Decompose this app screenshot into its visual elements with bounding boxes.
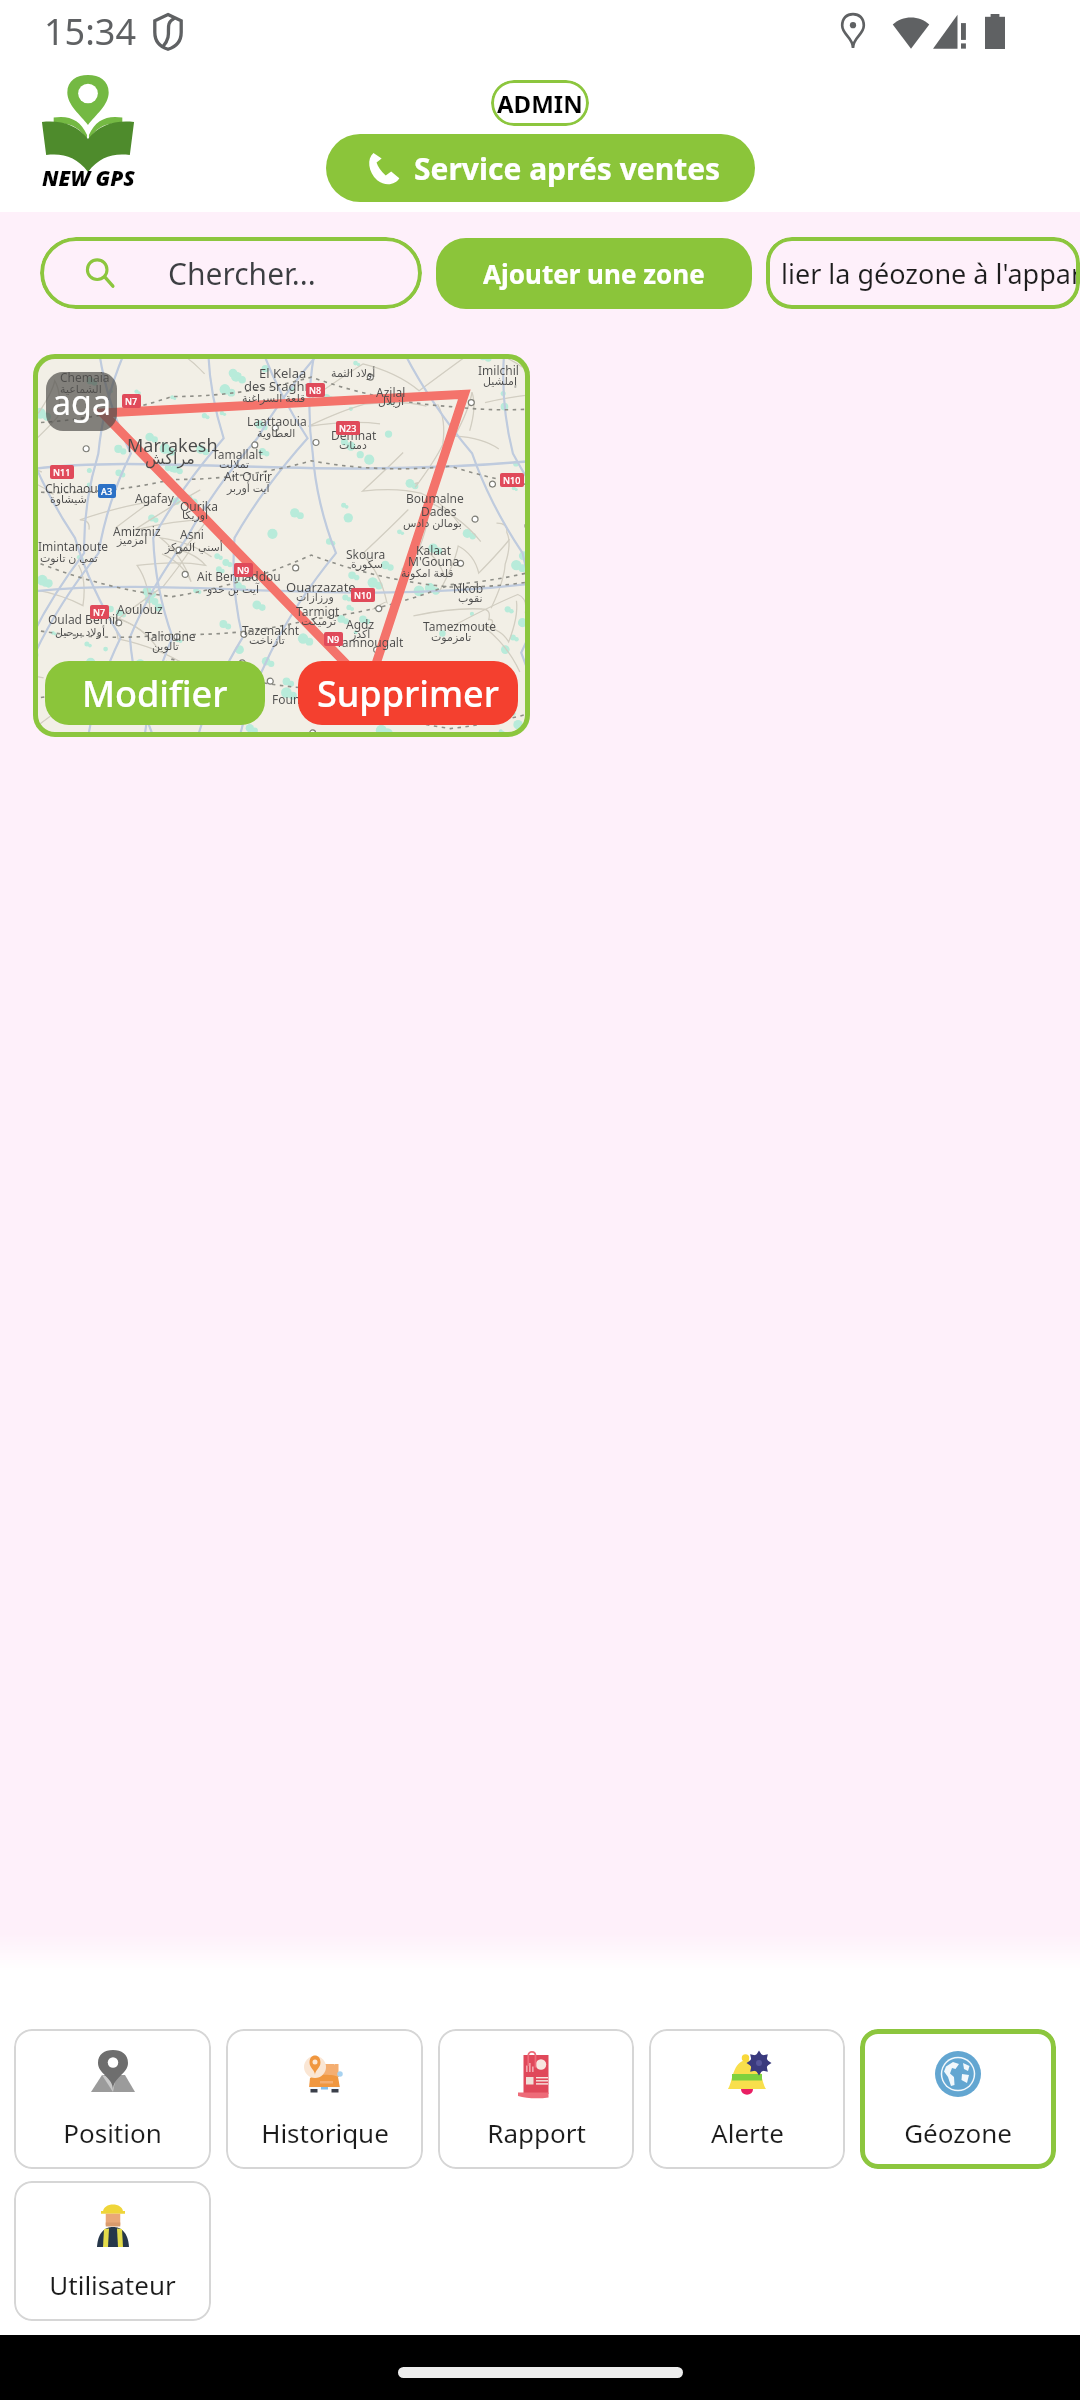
staticText: Oulad Berhil [48,611,119,627]
button[interactable]: Historique [226,2029,423,2169]
staticText: N10 [503,474,521,486]
staticText: أوريكا [182,509,209,522]
staticText: Marrakesh [127,433,218,458]
staticText: N11 [53,466,71,478]
staticText: Alerte [711,2115,784,2150]
staticText: lier la géozone à l'appareil [781,255,1080,292]
staticText: شيشاوة [50,493,87,506]
staticText: El Kelaa [259,364,307,382]
staticText: Chemaia [60,369,110,385]
staticText: أولاد برحيل [55,624,105,639]
staticText: N23 [339,422,357,434]
staticText: Imilchil [478,362,519,378]
staticText: Boumalne [406,490,464,506]
button[interactable]: Supprimer [298,661,518,725]
staticText: Tarmigt [296,603,340,619]
staticText: Foum Zguid [272,691,340,707]
other: Position [88,2049,138,2099]
staticText: أسني المركز [165,539,223,554]
button[interactable]: Géozone [860,2029,1056,2169]
staticText: des Sraghna [244,377,320,395]
staticText: Amizmiz [113,523,161,539]
button[interactable]: Modifier [45,661,265,725]
button[interactable]: lier la géozone à l'appareil [766,237,1080,309]
staticText: Azilal [376,384,406,400]
button[interactable]: Service aprés ventes [326,134,755,202]
button[interactable]: Chemaia [33,354,530,737]
other: Utilisateur [88,2201,138,2251]
staticText: أولاد الثمة [331,365,376,380]
button[interactable]: Alerte [649,2029,845,2169]
staticText: Taliouine [145,628,196,644]
staticText: N9 [237,564,250,576]
staticText: تمي ن تانوت [40,550,98,565]
staticText: Chercher... [168,253,316,294]
staticText: Géozone [904,2115,1012,2150]
staticText: تملالت [219,458,250,471]
staticText: إملشيل [483,375,518,388]
staticText: Position [63,2115,162,2150]
other: Géozone [933,2049,983,2099]
staticText: أمزميز [117,534,148,547]
staticText: Skoura [346,546,386,562]
staticText: Tamezmoute [423,618,496,634]
staticText: Service aprés ventes [414,148,721,189]
staticText: aga [52,379,112,425]
button[interactable]: Utilisateur [14,2181,211,2321]
staticText: N7 [125,395,138,407]
staticText: Kalaat [416,542,452,558]
staticText: Ait Ourir [224,468,273,484]
staticText: ADMIN [497,87,583,120]
staticText: A3 [101,485,113,497]
staticText: Dades [421,503,457,519]
button[interactable]: Position [14,2029,211,2169]
staticText: N8 [309,384,322,396]
staticText: Tamnougalt [336,634,404,650]
staticText: تازناخت [249,634,285,647]
staticText: تامزموت [431,631,472,644]
staticText: M'Gouna [408,553,460,569]
staticText: نقوب [458,592,483,605]
button[interactable]: Chercher... [40,237,422,309]
staticText: Aoulouz [117,601,163,617]
staticText: Chichaoua [45,480,105,496]
staticText: أزيلال [378,395,404,408]
staticText: قلعة السراغنة [242,390,306,405]
staticText: مراكش [145,449,195,468]
staticText: قلعة امكونة [401,565,454,580]
staticText: بومالن دادس [403,515,462,530]
staticText: NEW GPS [42,164,135,193]
staticText: Supprimer [317,669,499,718]
staticText: Ajouter une zone [483,256,705,291]
staticText: Asni [180,526,204,542]
staticText: الشماعية [60,383,102,396]
staticText: Historique [261,2115,389,2150]
staticText: سكورة [351,558,384,571]
staticText: Utilisateur [49,2267,176,2302]
button[interactable]: Ajouter une zone [436,238,752,309]
other: Historique [300,2049,350,2099]
staticText: Imintanoute [38,538,109,554]
staticText: Rapport [487,2115,586,2150]
staticText: ورزازات [296,591,334,604]
staticText: آيت بن حدو [207,581,259,596]
staticText: Nkob [453,580,484,596]
staticText: Ouarzazate [286,578,356,596]
staticText: ترميكت [301,615,337,628]
staticText: Tamallalt [212,446,263,462]
other: Alerte [722,2049,772,2099]
staticText: N9 [327,633,340,645]
staticText: أكدز [351,628,371,641]
staticText: N10 [354,589,372,601]
staticText: Modifier [82,669,228,718]
other: Rapport [511,2049,561,2099]
staticText: Agafay [135,490,174,506]
staticText: 15:34 [44,7,137,56]
staticText: العطاوية [257,427,296,440]
staticText: N7 [93,606,106,618]
staticText: آيت أوربر [227,480,270,495]
staticText: Agdz [346,616,375,632]
staticText: Ait Benhaddou [197,568,281,584]
button[interactable]: Rapport [438,2029,634,2169]
staticText: Tazenakht [242,622,300,638]
